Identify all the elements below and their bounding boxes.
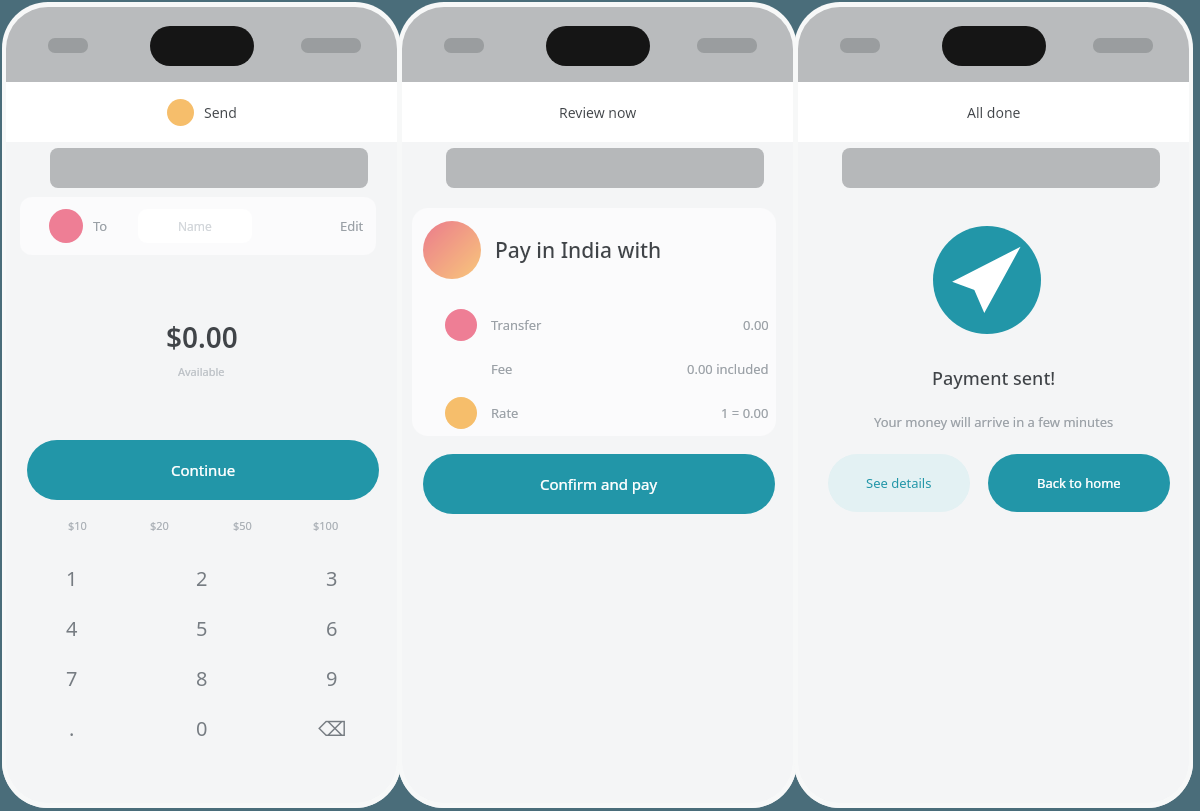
- button[interactable]: Confirm and pay: [423, 454, 775, 514]
- button[interactable]: 5: [137, 603, 267, 653]
- button[interactable]: Receipt: [842, 148, 1160, 188]
- staticText: 9: [326, 665, 338, 692]
- button[interactable]: 3: [267, 553, 397, 603]
- staticText: $0.00: [166, 318, 238, 356]
- button[interactable]: Fee: [445, 347, 769, 391]
- button[interactable]: Rate: [445, 391, 769, 435]
- staticText: .: [69, 715, 75, 742]
- staticText: 6: [326, 615, 338, 642]
- button[interactable]: $20: [118, 511, 201, 539]
- staticText: Fee: [491, 360, 513, 378]
- button[interactable]: $10: [36, 511, 118, 539]
- staticText: 0.00 included: [687, 360, 769, 378]
- staticText: 0.00: [743, 316, 769, 334]
- staticText: 8: [196, 665, 208, 692]
- staticText: $50: [233, 518, 252, 533]
- staticText: Continue: [171, 460, 236, 480]
- staticText: Send: [204, 103, 237, 122]
- button[interactable]: Continue: [27, 440, 379, 500]
- staticText: 0: [196, 715, 208, 742]
- button[interactable]: 8: [137, 653, 267, 703]
- staticText: 1 = 0.00: [721, 404, 769, 422]
- staticText: ⌫: [318, 717, 347, 740]
- button[interactable]: Delete: [267, 703, 397, 753]
- staticText: $20: [150, 518, 169, 533]
- staticText: 3: [326, 565, 338, 592]
- button[interactable]: 2: [137, 553, 267, 603]
- staticText: 7: [66, 665, 78, 692]
- staticText: Transfer: [491, 316, 542, 334]
- staticText: 4: [66, 615, 78, 642]
- staticText: Back to home: [1037, 474, 1121, 492]
- staticText: To: [93, 217, 108, 235]
- button[interactable]: $100: [284, 511, 367, 539]
- staticText: Payment sent!: [932, 366, 1056, 391]
- button[interactable]: Your profile: [167, 99, 194, 126]
- staticText: Your money will arrive in a few minutes: [874, 413, 1114, 431]
- staticText: Confirm and pay: [540, 474, 658, 494]
- staticText: Rate: [491, 404, 519, 422]
- button[interactable]: $50: [201, 511, 284, 539]
- staticText: $100: [313, 518, 339, 533]
- staticText: 5: [196, 615, 208, 642]
- button[interactable]: All done: [798, 82, 1189, 142]
- button[interactable]: To: [20, 197, 376, 255]
- button[interactable]: 1: [6, 553, 137, 603]
- button[interactable]: Transfer limit: [50, 148, 368, 188]
- staticText: $10: [68, 518, 87, 533]
- staticText: Name: [178, 218, 212, 234]
- staticText: 1: [66, 565, 78, 592]
- staticText: Review now: [559, 103, 637, 122]
- staticText: See details: [866, 474, 932, 492]
- button[interactable]: 0: [137, 703, 267, 753]
- button[interactable]: Back to home: [988, 454, 1170, 512]
- button[interactable]: Review now: [402, 82, 793, 142]
- button[interactable]: 4: [6, 603, 137, 653]
- button[interactable]: See details: [828, 454, 970, 512]
- button[interactable]: 9: [267, 653, 397, 703]
- button[interactable]: .: [6, 703, 137, 753]
- staticText: All done: [967, 103, 1021, 122]
- other: Payment sent: [933, 226, 1041, 334]
- staticText: 2: [196, 565, 208, 592]
- button[interactable]: Transfer: [445, 303, 769, 347]
- button[interactable]: 7: [6, 653, 137, 703]
- staticText: Available: [178, 364, 225, 379]
- button[interactable]: 6: [267, 603, 397, 653]
- staticText: Pay in India with: [495, 236, 662, 265]
- staticText: Edit: [340, 217, 364, 235]
- button[interactable]: Your profile: [6, 82, 397, 142]
- button[interactable]: Delivery estimate: [446, 148, 764, 188]
